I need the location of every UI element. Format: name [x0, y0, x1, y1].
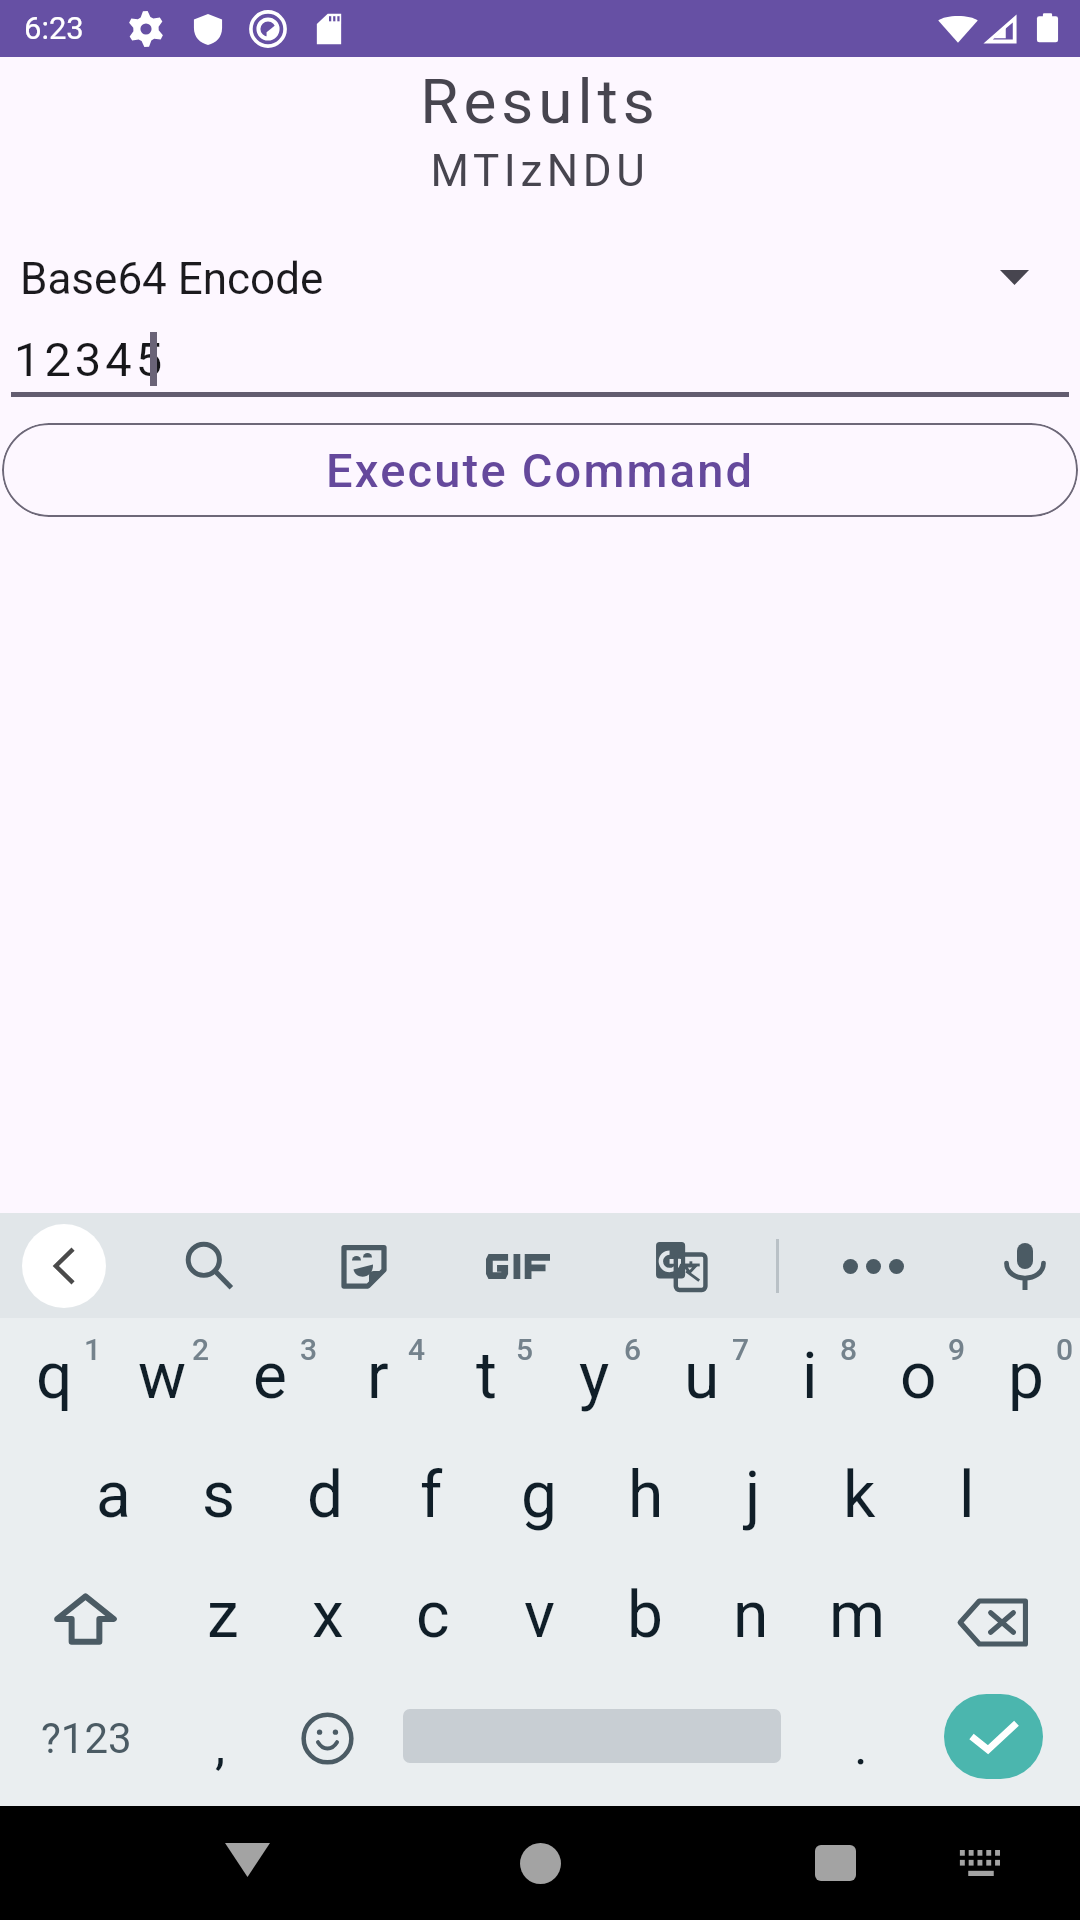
- button[interactable]: l: [913, 1458, 1020, 1574]
- button[interactable]: o: [864, 1339, 972, 1455]
- staticText: i: [802, 1339, 818, 1414]
- staticText: r: [367, 1339, 389, 1414]
- staticText: q: [36, 1339, 73, 1414]
- staticText: Execute Command: [326, 443, 755, 498]
- button[interactable]: t: [432, 1339, 540, 1455]
- button[interactable]: ?123: [0, 1691, 160, 1801]
- button[interactable]: r: [324, 1339, 432, 1455]
- staticText: o: [900, 1339, 937, 1414]
- button[interactable]: i: [756, 1339, 864, 1455]
- staticText: j: [745, 1458, 761, 1533]
- button[interactable]: Enter: [944, 1694, 1043, 1779]
- button[interactable]: j: [699, 1458, 806, 1574]
- staticText: a: [96, 1458, 131, 1533]
- staticText: w: [138, 1339, 187, 1414]
- staticText: c: [416, 1578, 450, 1653]
- button[interactable]: Shift: [0, 1578, 170, 1694]
- staticText: p: [1008, 1339, 1044, 1414]
- staticText: 9: [948, 1332, 966, 1367]
- staticText: y: [579, 1339, 610, 1414]
- staticText: 8: [840, 1332, 858, 1367]
- staticText: 12345: [14, 332, 167, 387]
- staticText: Results: [0, 65, 1080, 138]
- button[interactable]: v: [486, 1578, 592, 1694]
- button[interactable]: Emoji: [274, 1691, 382, 1801]
- staticText: 1: [84, 1332, 102, 1367]
- button[interactable]: x: [275, 1578, 380, 1694]
- staticText: ,: [215, 1716, 226, 1777]
- staticText: m: [829, 1578, 886, 1653]
- staticText: l: [959, 1458, 975, 1533]
- staticText: Base64 Encode: [20, 253, 324, 305]
- button[interactable]: .: [804, 1691, 912, 1801]
- staticText: z: [207, 1578, 239, 1653]
- staticText: 2: [192, 1332, 210, 1367]
- staticText: e: [253, 1339, 287, 1414]
- button[interactable]: n: [698, 1578, 804, 1694]
- button[interactable]: a: [60, 1458, 166, 1574]
- button[interactable]: Voice input: [983, 1226, 1067, 1306]
- button[interactable]: u: [648, 1339, 756, 1455]
- staticText: ?123: [41, 1714, 132, 1763]
- staticText: t: [476, 1339, 497, 1414]
- staticText: .: [854, 1716, 868, 1777]
- button[interactable]: ,: [166, 1691, 274, 1801]
- staticText: v: [524, 1578, 555, 1653]
- staticText: h: [628, 1458, 664, 1533]
- staticText: x: [312, 1578, 344, 1653]
- button[interactable]: Recent apps: [785, 1813, 885, 1913]
- button[interactable]: Search: [167, 1226, 251, 1306]
- staticText: g: [521, 1458, 557, 1533]
- button[interactable]: Input text: [0, 319, 1080, 394]
- button[interactable]: d: [272, 1458, 378, 1574]
- button[interactable]: y: [540, 1339, 648, 1455]
- button[interactable]: g: [485, 1458, 592, 1574]
- button[interactable]: h: [592, 1458, 699, 1574]
- button[interactable]: Home: [490, 1813, 590, 1913]
- button[interactable]: f: [378, 1458, 485, 1574]
- button[interactable]: w: [108, 1339, 216, 1455]
- button[interactable]: Stickers: [322, 1226, 406, 1306]
- button[interactable]: m: [804, 1578, 910, 1694]
- staticText: s: [202, 1458, 236, 1533]
- button[interactable]: k: [806, 1458, 913, 1574]
- staticText: u: [684, 1339, 720, 1414]
- button[interactable]: Close keyboard: [22, 1224, 106, 1308]
- staticText: 6:23: [24, 10, 84, 46]
- staticText: 4: [408, 1332, 426, 1367]
- button[interactable]: [473, 1231, 563, 1301]
- staticText: 6: [624, 1332, 642, 1367]
- button[interactable]: Execute Command: [2, 423, 1078, 517]
- button[interactable]: s: [166, 1458, 272, 1574]
- button[interactable]: e: [216, 1339, 324, 1455]
- staticText: k: [843, 1458, 876, 1533]
- button[interactable]: Base64 Encode: [0, 239, 1080, 317]
- button[interactable]: More options: [833, 1231, 913, 1301]
- button[interactable]: Translate: [639, 1226, 723, 1306]
- button[interactable]: p: [972, 1339, 1080, 1455]
- staticText: 0: [1056, 1332, 1074, 1367]
- button[interactable]: Back: [197, 1810, 297, 1910]
- staticText: MTIzNDU: [0, 145, 1080, 197]
- staticText: 3: [300, 1332, 318, 1367]
- staticText: 5: [516, 1332, 534, 1367]
- staticText: d: [307, 1458, 344, 1533]
- staticText: 7: [732, 1332, 750, 1367]
- button[interactable]: z: [170, 1578, 275, 1694]
- staticText: b: [627, 1578, 663, 1653]
- button[interactable]: Backspace: [910, 1578, 1080, 1694]
- staticText: f: [420, 1458, 443, 1533]
- button[interactable]: c: [380, 1578, 486, 1694]
- staticText: n: [733, 1578, 769, 1653]
- button[interactable]: q: [0, 1339, 108, 1455]
- button[interactable]: Switch keyboard: [931, 1813, 1031, 1913]
- button[interactable]: b: [592, 1578, 698, 1694]
